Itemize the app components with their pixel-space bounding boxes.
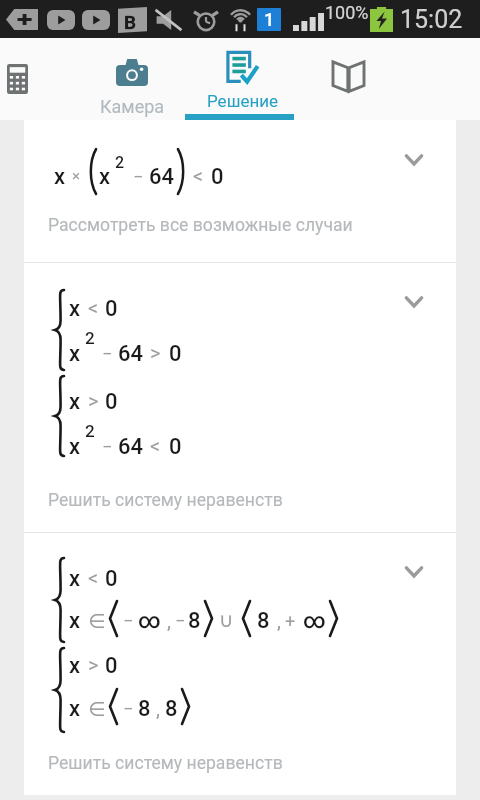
staticText: − xyxy=(123,698,134,719)
staticText: , xyxy=(277,609,281,632)
staticText: > xyxy=(88,653,99,676)
staticText: + xyxy=(285,610,296,631)
staticText: B xyxy=(124,11,136,33)
staticText: 0 xyxy=(105,653,118,679)
staticText: 64 xyxy=(118,434,144,460)
staticText: ∈ xyxy=(88,697,106,720)
button[interactable]: Glossary xyxy=(294,38,402,120)
staticText: 8 xyxy=(188,608,201,634)
staticText: 0 xyxy=(105,566,118,592)
staticText: 1 xyxy=(264,9,275,30)
button[interactable]: Решение xyxy=(186,38,294,120)
staticText: − xyxy=(102,343,113,364)
staticText: x xyxy=(99,164,111,190)
staticText: 2 xyxy=(115,153,125,172)
staticText: 8 xyxy=(165,696,178,722)
staticText: Решить систему неравенств xyxy=(48,753,283,774)
staticText: Решение xyxy=(207,91,279,111)
staticText: 0 xyxy=(169,341,182,367)
staticText: − xyxy=(175,610,186,631)
button[interactable]: x xyxy=(24,120,456,262)
staticText: x xyxy=(69,696,81,722)
staticText: x xyxy=(69,389,81,415)
staticText: 64 xyxy=(118,341,144,367)
staticText: x xyxy=(69,341,81,367)
staticText: Решить систему неравенств xyxy=(48,490,283,511)
staticText: x xyxy=(54,164,66,190)
staticText: > xyxy=(150,341,161,364)
staticText: Камера xyxy=(100,96,165,117)
staticText: x xyxy=(69,434,81,460)
staticText: 100% xyxy=(325,2,369,23)
staticText: < xyxy=(88,296,99,319)
staticText: − xyxy=(123,610,134,631)
button[interactable]: x xyxy=(24,533,456,795)
staticText: ∪ xyxy=(219,608,234,631)
button[interactable]: x xyxy=(24,263,456,532)
button[interactable]: Камера xyxy=(78,38,186,120)
staticText: x xyxy=(69,566,81,592)
staticText: ∞ xyxy=(303,608,326,634)
staticText: 64 xyxy=(149,164,175,190)
staticText: 0 xyxy=(105,389,118,415)
staticText: < xyxy=(88,566,99,589)
staticText: x xyxy=(69,296,81,322)
staticText: x xyxy=(69,653,81,679)
button[interactable]: Expand step xyxy=(381,550,447,594)
staticText: × xyxy=(72,167,81,185)
staticText: x xyxy=(69,608,81,634)
button[interactable]: Expand step xyxy=(381,280,447,324)
staticText: , xyxy=(156,697,160,720)
staticText: − xyxy=(102,436,113,457)
staticText: 2 xyxy=(85,328,95,348)
button[interactable]: Calculator xyxy=(0,38,72,120)
staticText: 8 xyxy=(138,696,151,722)
staticText: , xyxy=(167,609,171,632)
staticText: Рассмотреть все возможные случаи xyxy=(48,215,353,236)
staticText: > xyxy=(88,389,99,412)
staticText: 15:02 xyxy=(400,5,463,34)
button[interactable]: Expand step xyxy=(381,138,447,182)
staticText: − xyxy=(133,166,144,187)
staticText: ∈ xyxy=(88,609,106,632)
staticText: 0 xyxy=(169,434,182,460)
staticText: 0 xyxy=(105,296,118,322)
staticText: 8 xyxy=(257,608,270,634)
staticText: 0 xyxy=(211,164,224,190)
staticText: < xyxy=(193,164,204,187)
staticText: < xyxy=(150,434,161,457)
staticText: ∞ xyxy=(138,608,161,634)
staticText: 2 xyxy=(85,421,95,441)
